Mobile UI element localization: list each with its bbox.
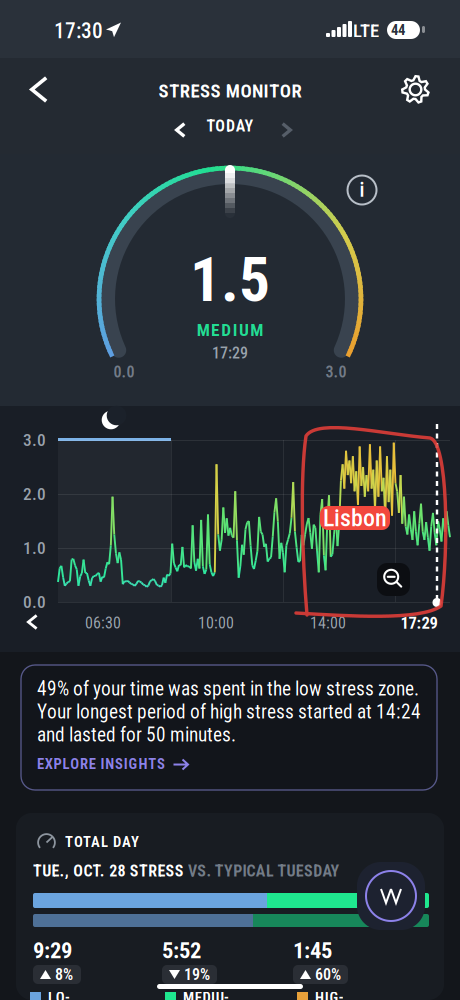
staticText: 5:52	[162, 937, 201, 964]
staticText: i	[359, 178, 364, 202]
staticText: Your longest period of high stress start…	[37, 701, 421, 723]
staticText: 0.0	[23, 592, 46, 612]
staticText: VS. TYPICAL TUESDAY	[188, 862, 340, 880]
button[interactable]: Previous range	[18, 605, 47, 639]
staticText: Lisbon	[323, 504, 387, 532]
staticText: 1.0	[23, 538, 46, 558]
button[interactable]: Zoom out	[377, 563, 410, 596]
staticText: and lasted for 50 minutes.	[37, 724, 236, 746]
button[interactable]: Information	[340, 168, 384, 212]
staticText: 1:45	[293, 937, 332, 964]
staticText: 3.0	[23, 430, 46, 450]
staticText: 2.0	[23, 484, 46, 504]
staticText: STRESS MONITOR	[159, 80, 301, 102]
staticText: 9:29	[33, 937, 72, 964]
staticText: 19%	[184, 965, 210, 984]
staticText: 49% of your time was spent in the low st…	[37, 678, 419, 700]
staticText: 10:00	[198, 614, 234, 632]
staticText: 17:30	[54, 18, 103, 43]
staticText: 60%	[315, 965, 341, 984]
staticText: 14:00	[310, 614, 346, 632]
button[interactable]: Next day	[272, 113, 301, 147]
staticText: 3.0	[325, 363, 346, 381]
staticText: HIGH	[315, 989, 348, 1000]
staticText: 06:30	[85, 614, 121, 632]
button[interactable]: 49% of your time was spent in the low st…	[21, 665, 437, 790]
button[interactable]: Back	[16, 64, 62, 115]
staticText: 44	[391, 21, 405, 39]
staticText: MEDIUM	[183, 989, 235, 1000]
staticText: LTE	[353, 20, 379, 42]
staticText: EXPLORE INSIGHTS	[37, 755, 165, 773]
staticText: 17:29	[212, 344, 248, 362]
staticText: TUE., OCT. 28 STRESS	[33, 862, 184, 880]
staticText: 17:29	[400, 613, 437, 633]
staticText: 8%	[55, 965, 73, 984]
staticText: TOTAL DAY	[65, 833, 139, 851]
staticText: LOW	[48, 989, 76, 1000]
staticText: MEDIUM	[197, 320, 263, 340]
staticText: 0.0	[113, 363, 134, 381]
staticText: TODAY	[206, 117, 254, 135]
button[interactable]: Settings	[390, 64, 441, 115]
button[interactable]: Previous day	[166, 113, 195, 147]
staticText: 1.5	[190, 244, 270, 316]
